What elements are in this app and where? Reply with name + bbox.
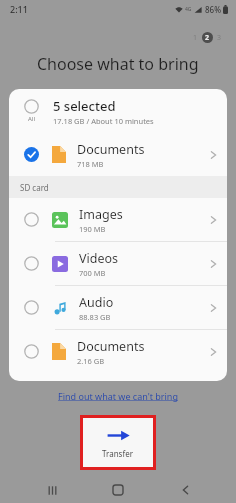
button[interactable]: All [9,89,227,133]
button[interactable]: Videos [9,242,227,285]
staticText: 5 selected [53,97,116,115]
staticText: 17.18 GB / About 10 minutes [53,116,154,126]
staticText: 190 MB [79,224,106,234]
button[interactable]: Transfer [83,418,153,467]
staticText: Videos [79,250,119,267]
staticText: 718 MB [77,159,104,169]
staticText: 2 [205,33,210,43]
staticText: Documents [77,141,145,158]
button[interactable]: Images [9,198,227,241]
staticText: 1 [193,33,198,43]
staticText: Images [79,206,123,223]
button[interactable]: Documents [9,330,227,373]
staticText: All [28,115,35,123]
staticText: 2:11 [10,3,28,15]
button[interactable]: Back [170,477,200,503]
staticText: SD card [20,182,49,193]
staticText: 3 [217,33,222,43]
staticText: 86% [205,4,221,15]
button[interactable]: Audio [9,286,227,329]
button[interactable]: Documents [9,133,227,176]
staticText: Transfer [102,448,134,459]
staticText: Audio [79,294,114,311]
button[interactable]: Recents [37,477,67,503]
staticText: Choose what to bring [37,53,199,75]
staticText: Documents [77,338,145,355]
button[interactable]: Home [103,477,133,503]
button[interactable]: Find out what we can't bring [58,390,178,402]
staticText: 4G [185,6,192,13]
staticText: 700 MB [79,268,106,278]
staticText: 2.16 GB [77,356,105,366]
staticText: 88.83 GB [79,312,111,322]
